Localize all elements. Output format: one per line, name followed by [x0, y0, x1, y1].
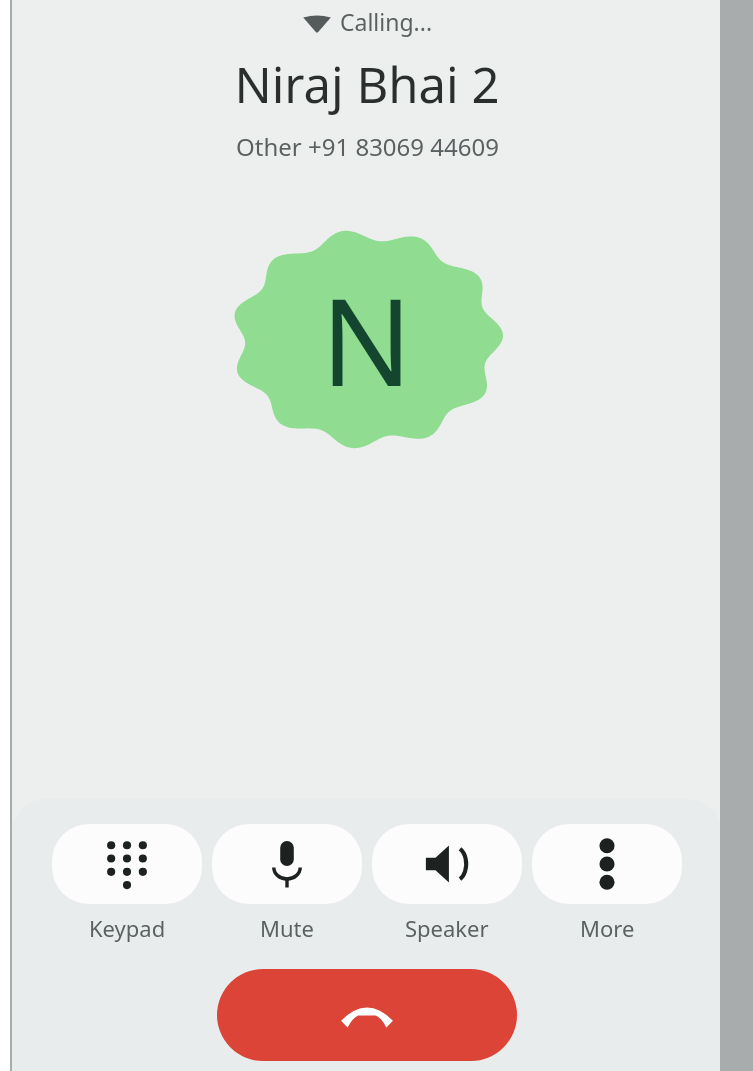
other: More options	[598, 840, 616, 888]
button[interactable]: Speaker	[372, 824, 522, 943]
staticText: Calling...	[340, 6, 433, 37]
other: Mute	[267, 839, 307, 889]
staticText: N	[321, 258, 413, 421]
staticText: Niraj Bhai 2	[234, 51, 500, 118]
staticText: Other +91 83069 44609	[236, 130, 499, 163]
button[interactable]: More options	[532, 824, 682, 943]
staticText: Speaker	[405, 913, 489, 943]
staticText: More	[580, 913, 635, 943]
button[interactable]: Keypad	[52, 824, 202, 943]
staticText: Mute	[260, 913, 314, 943]
button[interactable]: End call	[217, 969, 517, 1061]
other: Speaker	[423, 842, 471, 886]
staticText: Keypad	[89, 913, 166, 943]
button[interactable]: Mute	[212, 824, 362, 943]
other: Keypad	[103, 838, 151, 890]
